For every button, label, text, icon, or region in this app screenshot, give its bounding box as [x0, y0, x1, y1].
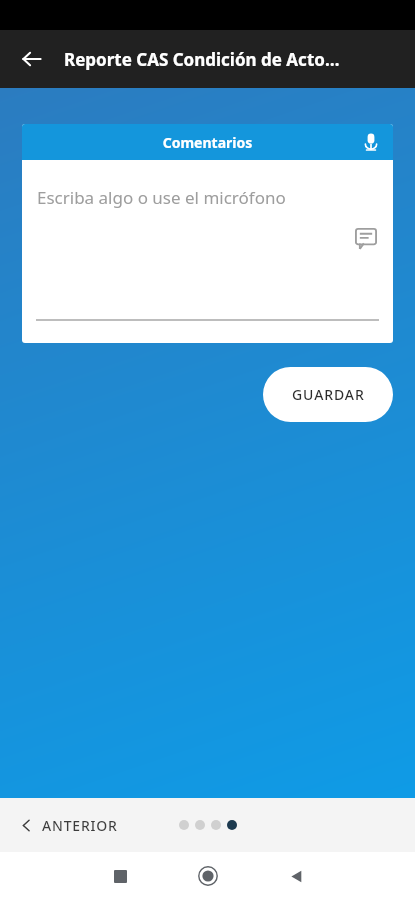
button[interactable]: Home [184, 852, 232, 900]
button[interactable]: Use microphone [355, 126, 387, 158]
button[interactable]: ANTERIOR [14, 810, 124, 841]
button[interactable]: Comment [349, 222, 383, 256]
button[interactable]: Escriba algo o use el micrófono [22, 160, 393, 343]
button[interactable]: Recents [96, 852, 144, 900]
button[interactable]: Back [12, 39, 52, 79]
staticText: Reporte CAS Condición de Acto… [64, 48, 340, 71]
button[interactable]: Back [272, 852, 320, 900]
staticText: GUARDAR [292, 385, 365, 404]
staticText: Comentarios [22, 133, 393, 152]
staticText: ANTERIOR [42, 816, 118, 835]
staticText: Escriba algo o use el micrófono [37, 186, 286, 209]
button[interactable]: GUARDAR [263, 367, 393, 422]
